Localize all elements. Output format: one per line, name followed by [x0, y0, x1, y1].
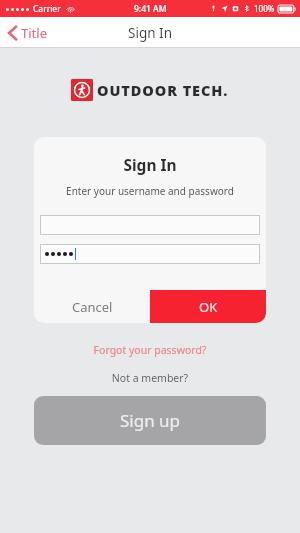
staticText: 100% — [254, 3, 275, 14]
button[interactable] — [40, 215, 260, 235]
button[interactable]: Cancel — [34, 290, 150, 323]
button[interactable]: Back — [0, 20, 57, 46]
staticText: Carrier — [33, 3, 61, 15]
staticText: OK — [199, 298, 218, 316]
button[interactable]: OK — [150, 290, 266, 323]
staticText: Sign In — [34, 154, 266, 175]
staticText: 9:41 AM — [134, 3, 167, 15]
staticText: Enter your username and password — [34, 184, 266, 198]
staticText: Cancel — [72, 298, 113, 316]
button[interactable] — [40, 244, 260, 264]
button[interactable]: Forgot your password? — [0, 341, 300, 359]
staticText: Not a member? — [0, 371, 300, 385]
other: Back — [8, 25, 17, 41]
button[interactable]: Sign up — [34, 396, 266, 445]
staticText: Sign up — [120, 409, 181, 432]
staticText: Title — [21, 24, 47, 42]
staticText: Sign In — [128, 24, 172, 42]
staticText: OUTDOOR TECH. — [97, 80, 229, 100]
